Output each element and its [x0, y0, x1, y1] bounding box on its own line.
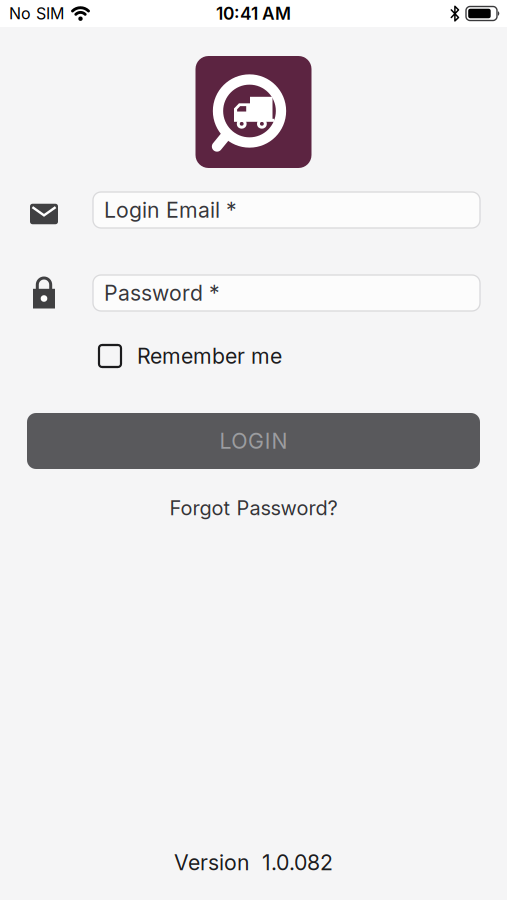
- staticText: 10:41 AM: [216, 3, 291, 24]
- button[interactable]: Password *: [93, 275, 480, 311]
- staticText: Password *: [104, 280, 220, 306]
- staticText: Login Email *: [104, 197, 237, 223]
- button[interactable]: Remember me: [99, 343, 282, 369]
- button[interactable]: LOGIN: [27, 413, 480, 469]
- staticText: LOGIN: [219, 428, 288, 454]
- button[interactable]: Login Email *: [93, 192, 480, 228]
- staticText: Remember me: [137, 343, 282, 369]
- staticText: Forgot Password?: [169, 496, 337, 520]
- button[interactable]: Forgot Password?: [169, 496, 337, 520]
- staticText: Version 1.0.082: [174, 850, 333, 875]
- staticText: No SIM: [9, 4, 64, 23]
